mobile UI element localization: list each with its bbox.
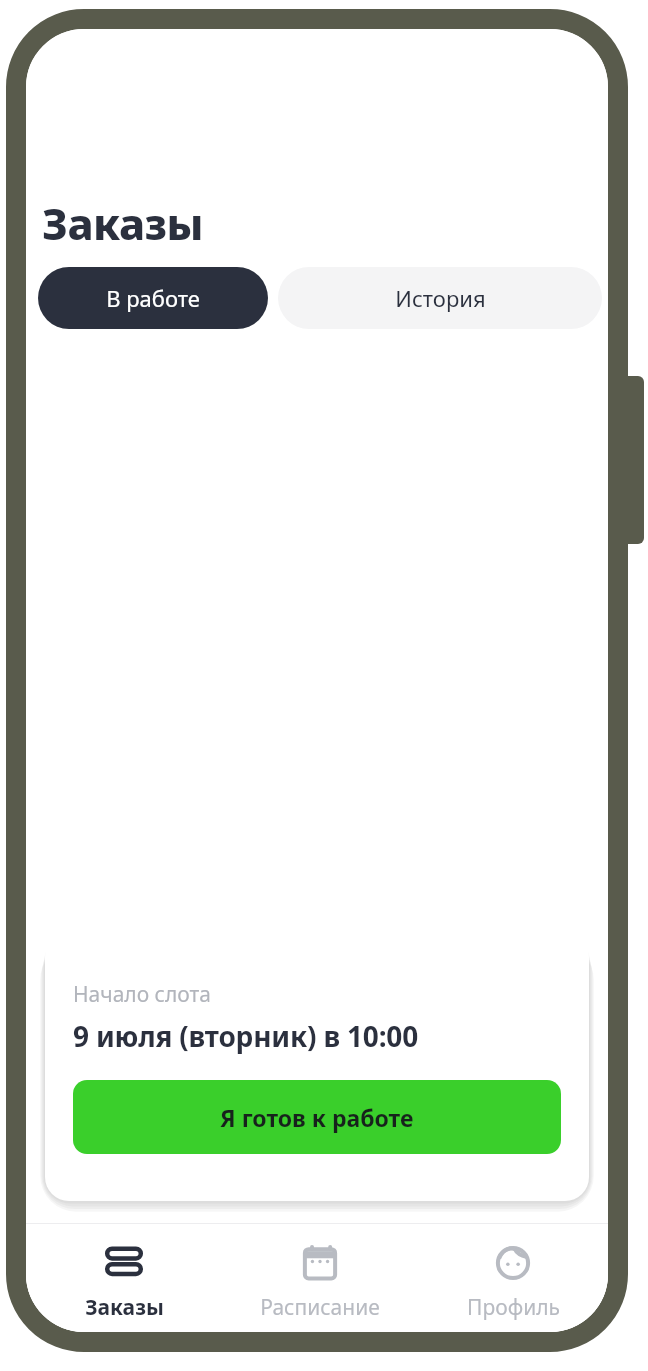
staticText: В работе bbox=[106, 283, 200, 313]
staticText: Профиль bbox=[467, 1293, 560, 1322]
button[interactable]: Я готов к работе bbox=[73, 1080, 561, 1154]
staticText: 9 июля (вторник) в 10:00 bbox=[73, 1017, 418, 1055]
staticText: Начало слота bbox=[73, 980, 211, 1009]
other: Заказы bbox=[103, 1242, 145, 1284]
staticText: Заказы bbox=[42, 194, 204, 253]
staticText: История bbox=[395, 283, 486, 313]
staticText: Расписание bbox=[260, 1293, 380, 1322]
button[interactable]: Заказы bbox=[26, 1224, 222, 1322]
button[interactable]: Профиль bbox=[418, 1224, 608, 1322]
other: Профиль bbox=[492, 1242, 534, 1284]
other: Расписание bbox=[299, 1242, 341, 1284]
button[interactable]: История bbox=[278, 267, 602, 329]
button[interactable]: Расписание bbox=[222, 1224, 418, 1322]
staticText: Заказы bbox=[85, 1293, 164, 1322]
button[interactable]: В работе bbox=[38, 267, 268, 329]
staticText: Я готов к работе bbox=[220, 1102, 414, 1133]
